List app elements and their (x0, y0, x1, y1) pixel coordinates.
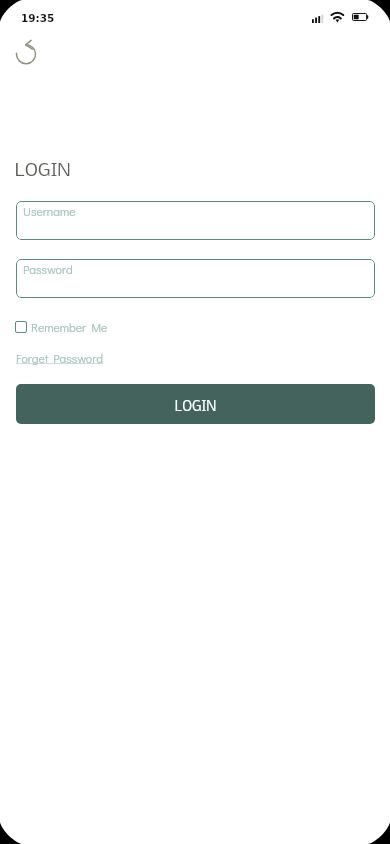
button[interactable]: LOGIN (16, 384, 375, 424)
staticText: LOGIN (15, 154, 71, 182)
button[interactable]: Remember Me (15, 317, 108, 337)
staticText: Password (23, 261, 73, 277)
staticText: 19:35 (21, 12, 55, 24)
button[interactable]: Password (16, 259, 375, 298)
staticText: LOGIN (175, 395, 216, 416)
staticText: Remember Me (31, 319, 108, 335)
button[interactable]: Forget Password (16, 350, 103, 366)
button[interactable]: Back (13, 42, 39, 68)
staticText: Username (23, 203, 76, 219)
button[interactable]: Username (16, 201, 375, 240)
